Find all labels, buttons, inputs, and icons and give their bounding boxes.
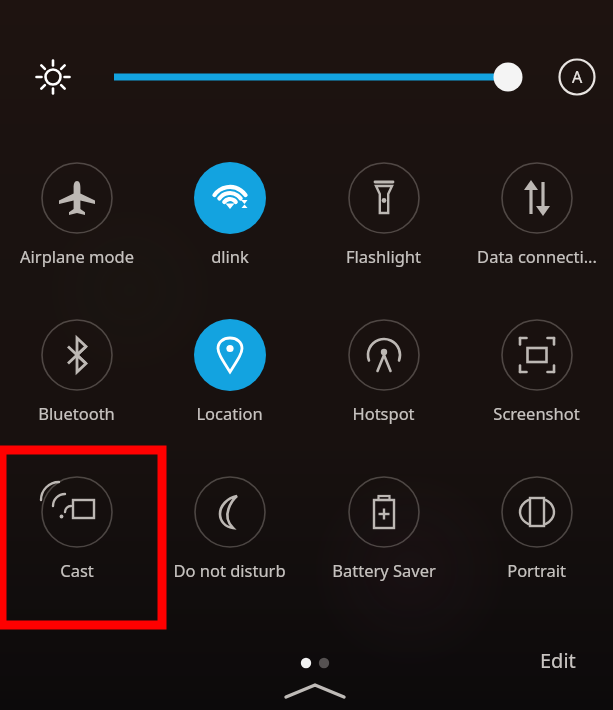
button[interactable]: Cast [0,466,153,602]
other: Collapse [282,680,348,704]
button[interactable]: Portrait [460,466,613,602]
button[interactable]: dlink [153,152,306,288]
button[interactable]: Do not disturb [153,466,306,602]
staticText: Portrait [507,559,566,581]
staticText: A [572,66,583,88]
button[interactable]: Edit [518,638,598,682]
staticText: Airplane mode [20,245,134,267]
button[interactable]: Screenshot [460,309,613,445]
staticText: Edit [540,647,576,674]
staticText: dlink [211,245,249,267]
button[interactable]: Flashlight [307,152,460,288]
staticText: Cast [60,559,94,581]
staticText: Location [196,402,263,424]
staticText: Battery Saver [332,559,436,581]
staticText: Data connecti... [477,245,597,267]
button[interactable]: Data connecti... [460,152,613,288]
button[interactable]: Battery Saver [307,466,460,602]
button[interactable]: Airplane mode [0,152,153,288]
button[interactable]: Location [153,309,306,445]
button[interactable]: Hotspot [307,309,460,445]
button[interactable]: Brightness slider [105,56,530,98]
staticText: Hotspot [352,402,415,424]
staticText: Bluetooth [38,402,115,424]
staticText: Screenshot [493,402,580,424]
button[interactable]: Bluetooth [0,309,153,445]
staticText: Flashlight [346,245,421,267]
staticText: Do not disturb [173,559,286,581]
button[interactable]: Auto brightness [557,57,597,97]
button[interactable]: Brightness [32,56,74,98]
